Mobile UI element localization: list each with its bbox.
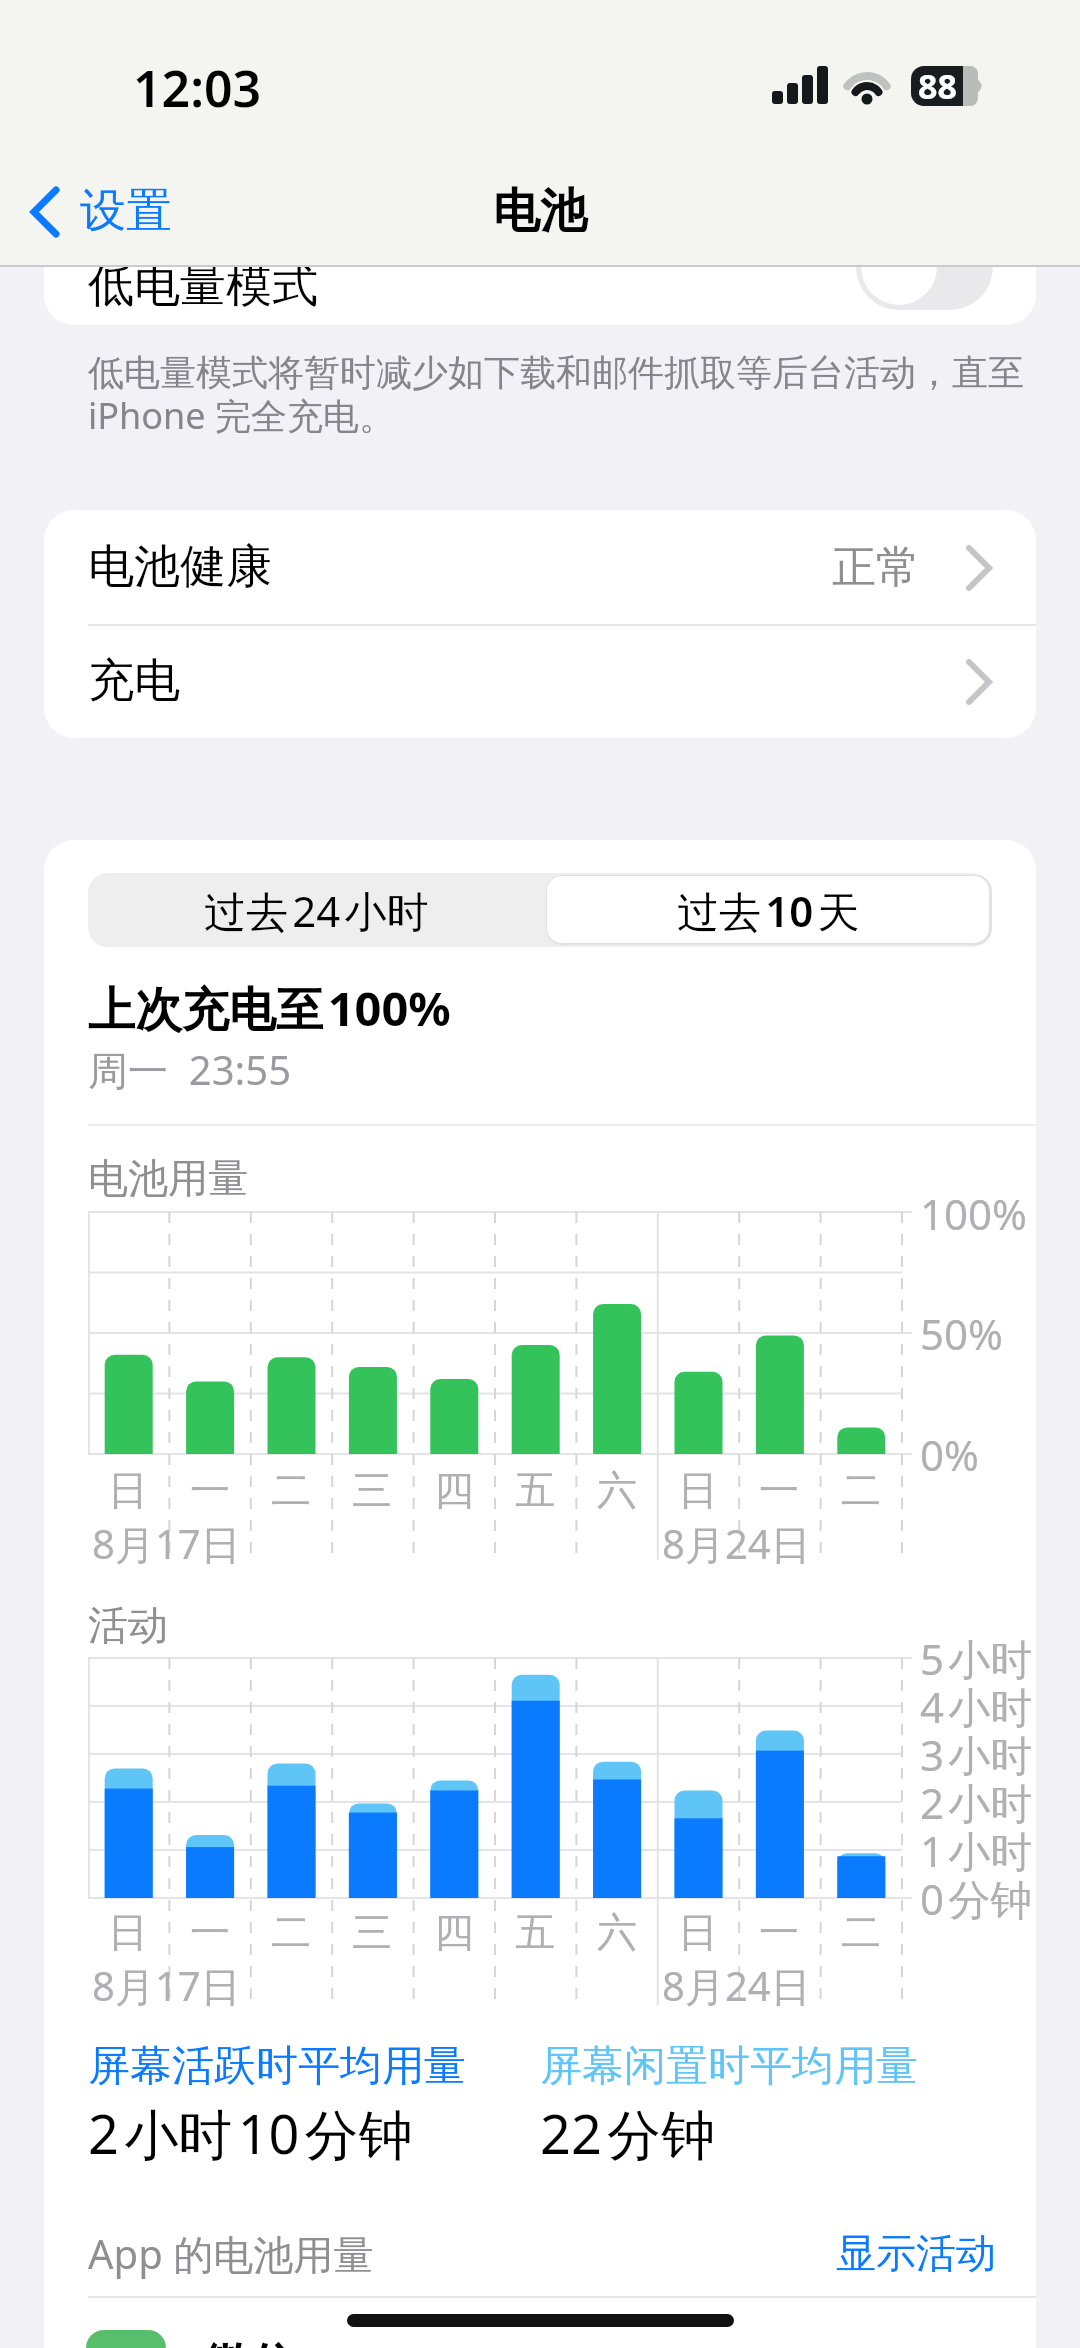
staticText: iPhone 完全充电。 xyxy=(88,391,396,440)
staticText: 电池 xyxy=(493,182,587,241)
staticText: 一 xyxy=(759,1465,799,1515)
staticText: 一 xyxy=(190,1907,230,1957)
staticText: 六 xyxy=(597,1907,637,1957)
staticText: 电池用量 xyxy=(88,1153,248,1203)
staticText: 三 xyxy=(352,1907,392,1957)
staticText: 88 xyxy=(918,63,957,109)
staticText: 低电量模式 xyxy=(88,257,318,315)
staticText: 二 xyxy=(271,1907,311,1957)
staticText: App 的电池用量 xyxy=(88,2226,374,2281)
staticText: 日 xyxy=(108,1465,148,1515)
staticText: 0 分钟 xyxy=(920,1870,1033,1927)
staticText: 8月17日 xyxy=(92,1958,241,2013)
staticText: 设置 xyxy=(80,182,172,240)
button[interactable] xyxy=(44,240,1036,325)
staticText: 二 xyxy=(271,1465,311,1515)
staticText: 12:03 xyxy=(133,54,262,122)
staticText: 二 xyxy=(841,1465,881,1515)
button[interactable]: 显示活动 xyxy=(700,2213,996,2293)
button[interactable] xyxy=(44,510,1036,624)
staticText: 三 xyxy=(352,1465,392,1515)
staticText: 微信 xyxy=(204,2337,296,2348)
button[interactable] xyxy=(856,224,993,310)
staticText: 屏幕活跃时平均用量 xyxy=(88,2040,466,2093)
staticText: 50% xyxy=(920,1305,1003,1362)
staticText: 五 xyxy=(515,1907,555,1957)
staticText: 8月24日 xyxy=(662,1958,811,2013)
staticText: 5 小时 xyxy=(920,1630,1033,1687)
staticText: 低电量模式将暂时减少如下载和邮件抓取等后台活动，直至 xyxy=(88,350,1024,395)
staticText: 四 xyxy=(434,1465,474,1515)
staticText: 活动 xyxy=(88,1600,168,1650)
staticText: 电池健康 xyxy=(88,538,272,596)
staticText: 100% xyxy=(920,1185,1027,1242)
staticText: 8月24日 xyxy=(662,1516,811,1571)
staticText: 正常 xyxy=(832,540,920,595)
staticText: 2 小时 xyxy=(920,1774,1033,1831)
staticText: 8月17日 xyxy=(92,1516,241,1571)
staticText: 日 xyxy=(108,1907,148,1957)
staticText: 3 小时 xyxy=(920,1726,1033,1783)
staticText: 过去 24 小时 xyxy=(204,882,429,939)
button[interactable] xyxy=(88,873,544,947)
staticText: 上次充电至 100% xyxy=(88,976,451,1040)
staticText: 四 xyxy=(434,1907,474,1957)
button[interactable] xyxy=(24,184,224,240)
staticText: 屏幕闲置时平均用量 xyxy=(540,2040,918,2093)
staticText: 22 分钟 xyxy=(540,2096,716,2170)
staticText: 充电 xyxy=(88,652,180,710)
staticText: 过去 10 天 xyxy=(677,882,860,939)
staticText: 五 xyxy=(515,1465,555,1515)
staticText: 二 xyxy=(841,1907,881,1957)
staticText: 2 小时 10 分钟 xyxy=(88,2096,413,2170)
staticText: 六 xyxy=(597,1465,637,1515)
staticText: 周一 23:55 xyxy=(88,1042,292,1097)
button[interactable] xyxy=(547,876,989,943)
button[interactable] xyxy=(44,624,1036,738)
staticText: 4 小时 xyxy=(920,1678,1033,1735)
staticText: 1 小时 xyxy=(920,1822,1033,1879)
staticText: 一 xyxy=(190,1465,230,1515)
staticText: 日 xyxy=(678,1907,718,1957)
staticText: 日 xyxy=(678,1465,718,1515)
staticText: 0% xyxy=(920,1426,979,1483)
staticText: 一 xyxy=(759,1907,799,1957)
staticText: 显示活动 xyxy=(836,2228,996,2278)
